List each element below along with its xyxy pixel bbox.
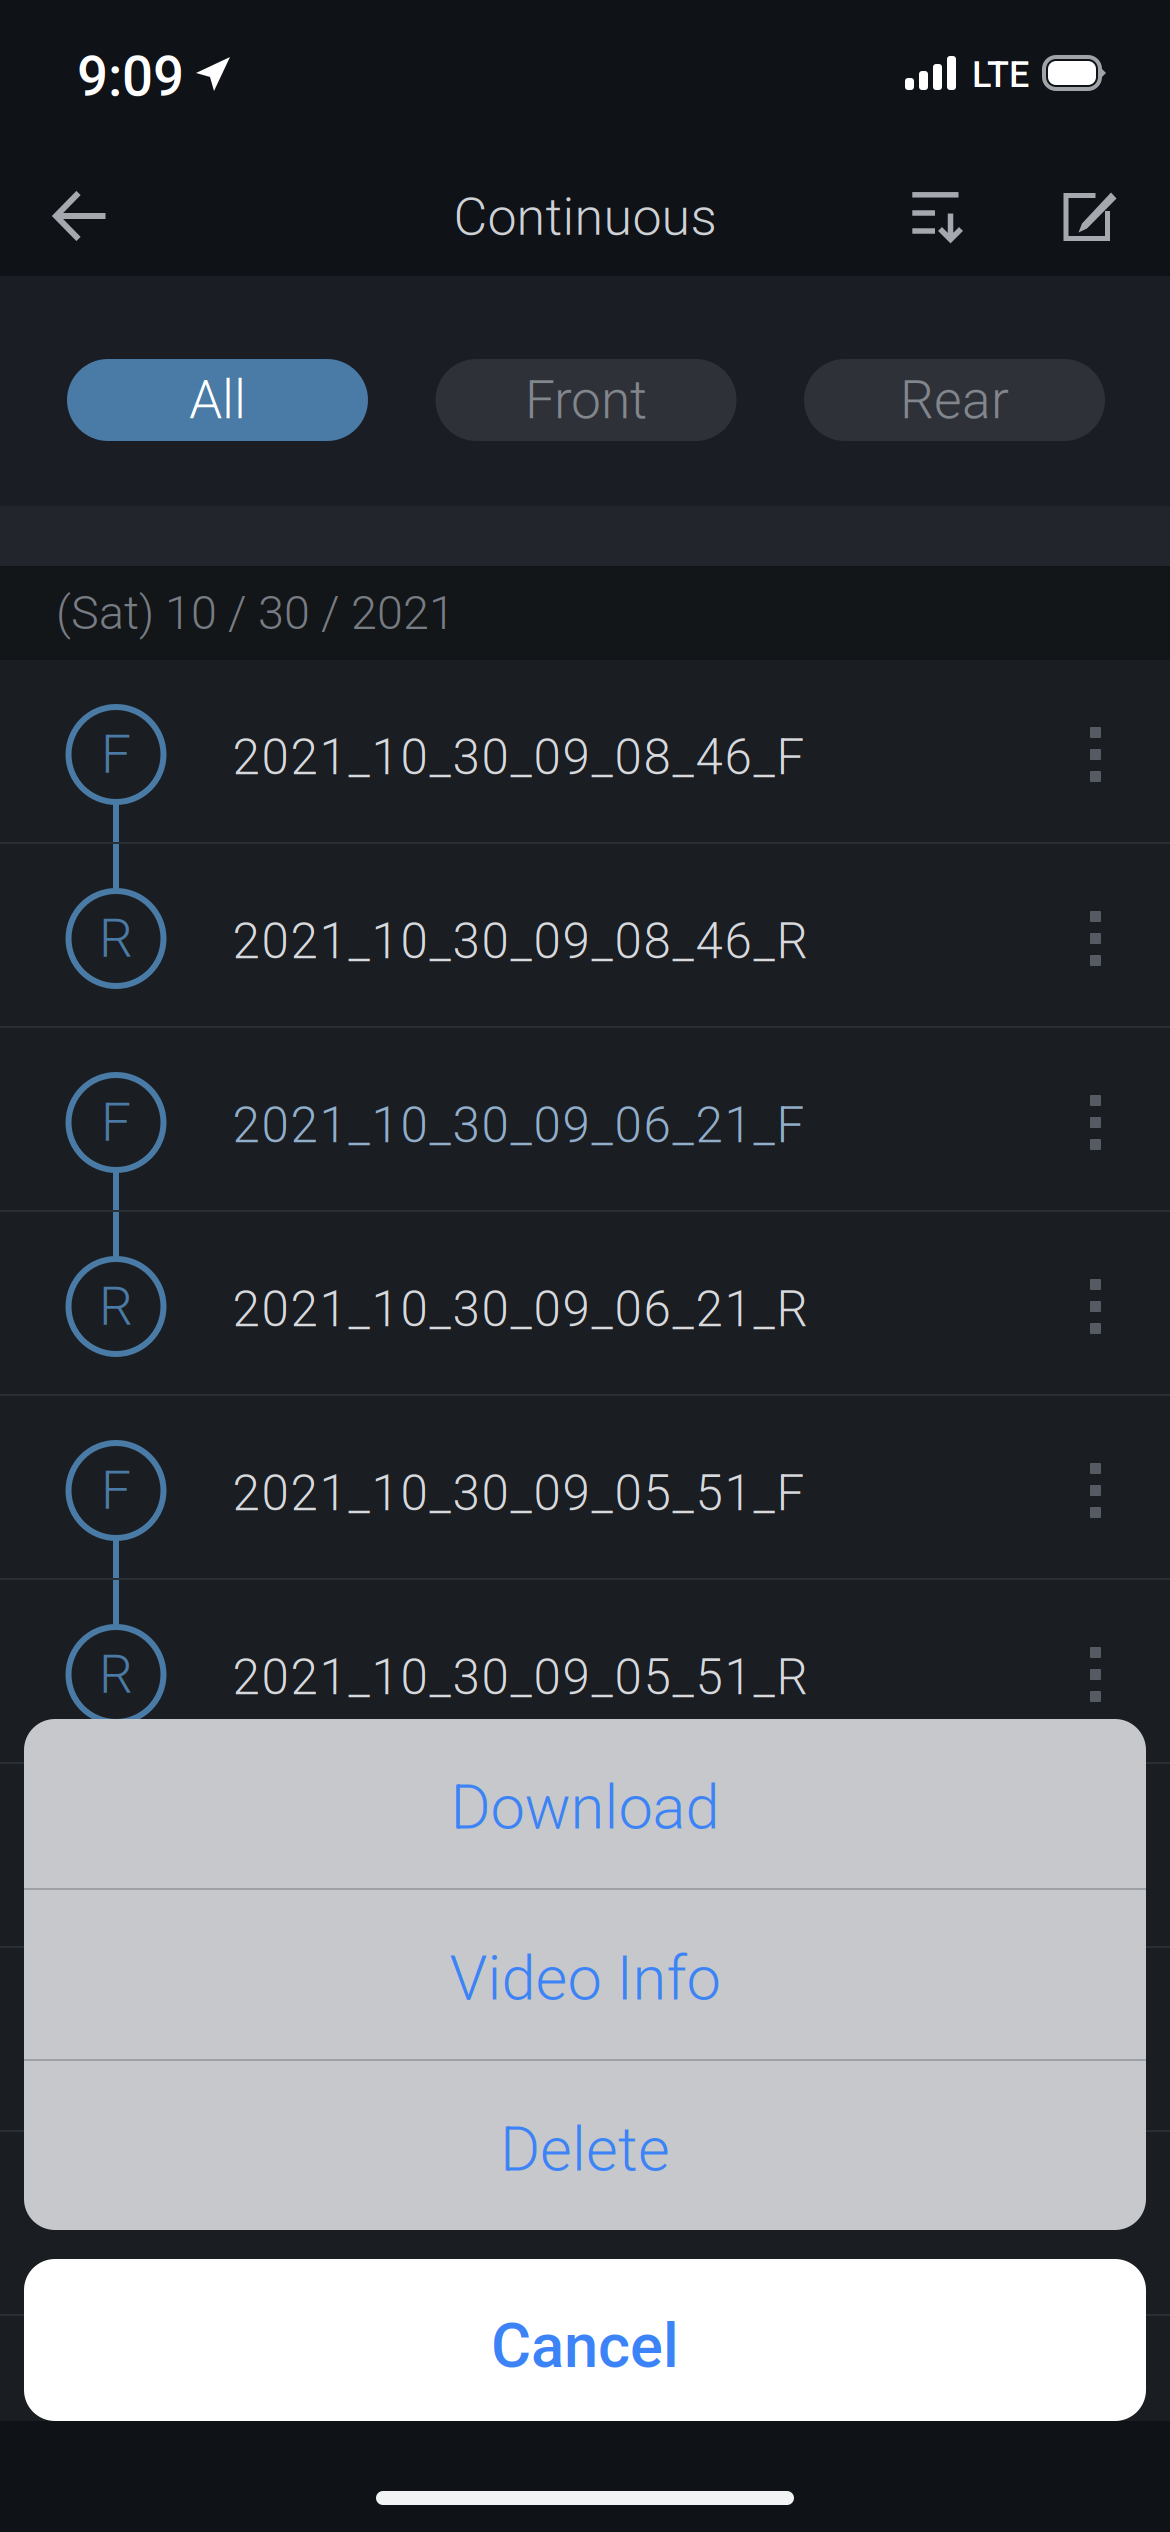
staticText: R	[99, 2379, 133, 2442]
staticText: LTE	[972, 54, 1029, 96]
button[interactable]: F	[0, 660, 1170, 842]
staticText: F	[101, 2195, 131, 2258]
button[interactable]: R	[0, 1948, 1170, 2130]
button[interactable]: Cancel	[24, 2259, 1146, 2421]
staticText: Front	[525, 369, 647, 431]
button[interactable]: All	[67, 359, 368, 441]
staticText: R	[99, 1643, 133, 1706]
staticText: 2021_10_30_09_04_12_R	[232, 2385, 807, 2442]
staticText: F	[101, 1459, 131, 1522]
button[interactable]: Compose	[1032, 161, 1142, 273]
button[interactable]: Download	[24, 1719, 1146, 1888]
button[interactable]: R	[0, 1212, 1170, 1394]
staticText: 2021_10_30_09_04_58_F	[232, 1833, 804, 1890]
staticText: 2021_10_30_09_05_51_F	[232, 1465, 804, 1522]
button[interactable]: R	[0, 844, 1170, 1026]
button[interactable]: Video Info	[24, 1890, 1146, 2059]
staticText: 2021_10_30_09_05_51_R	[232, 1649, 807, 1706]
staticText: Rear	[900, 369, 1009, 431]
button[interactable]: F	[0, 2132, 1170, 2314]
staticText: (Sat) 10 / 30 / 2021	[56, 586, 455, 640]
button[interactable]: F	[0, 1028, 1170, 1210]
button[interactable]: F	[0, 1764, 1170, 1946]
button[interactable]: Delete	[24, 2061, 1146, 2230]
staticText: Continuous	[453, 186, 716, 247]
button[interactable]: Back	[24, 161, 136, 273]
button[interactable]: Rear	[804, 359, 1105, 441]
staticText: R	[99, 907, 133, 970]
staticText: 9:09	[77, 45, 184, 109]
staticText: 2021_10_30_09_04_12_F	[232, 2201, 804, 2258]
staticText: F	[101, 1091, 131, 1154]
button[interactable]: R	[0, 1580, 1170, 1762]
staticText: 2021_10_30_09_08_46_F	[232, 729, 804, 786]
staticText: Download	[450, 1772, 719, 1843]
staticText: R	[99, 2011, 133, 2074]
staticText: Cancel	[491, 2310, 679, 2382]
staticText: R	[99, 1275, 133, 1338]
staticText: F	[101, 1827, 131, 1890]
staticText: Video Info	[449, 1943, 720, 2014]
button[interactable]: F	[0, 1396, 1170, 1578]
button[interactable]: Front	[435, 359, 736, 441]
staticText: F	[101, 723, 131, 786]
staticText: All	[189, 369, 246, 431]
staticText: 2021_10_30_09_04_58_R	[232, 2017, 807, 2074]
staticText: Delete	[500, 2114, 670, 2185]
button[interactable]: R	[0, 2316, 1170, 2498]
staticText: 2021_10_30_09_06_21_R	[232, 1281, 807, 1338]
button[interactable]: Sort	[881, 161, 991, 273]
staticText: 2021_10_30_09_06_21_F	[232, 1097, 804, 1154]
staticText: 2021_10_30_09_08_46_R	[232, 913, 807, 970]
